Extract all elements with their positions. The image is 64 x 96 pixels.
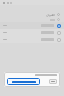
other: Selected option — [57, 24, 61, 28]
button[interactable]: Option — [0, 36, 64, 43]
button[interactable]: Selected option — [0, 22, 64, 29]
staticText: العنوان — [46, 13, 55, 16]
button[interactable] — [49, 79, 57, 84]
button[interactable] — [7, 78, 40, 85]
other: Option — [57, 38, 61, 42]
button[interactable] — [0, 17, 64, 22]
button[interactable]: Option — [0, 29, 64, 36]
other: Option — [57, 31, 61, 35]
button[interactable]: العنوان — [0, 11, 64, 17]
